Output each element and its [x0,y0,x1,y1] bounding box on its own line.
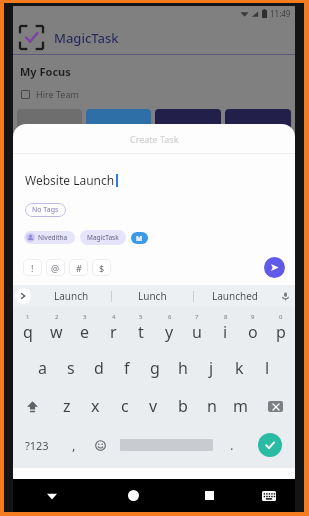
button[interactable]: k [225,349,253,387]
button[interactable]: m [226,387,255,425]
staticText: My Focus [20,64,71,79]
staticText: a [38,357,47,379]
button[interactable]: b [168,387,197,425]
staticText: Launch [54,289,89,303]
button[interactable]: No Tags [25,203,66,217]
staticText: e [80,321,90,343]
button[interactable]: Voice input [275,285,295,307]
button[interactable]: z [52,387,81,425]
staticText: s [67,357,75,379]
button[interactable]: 8 [211,307,239,349]
button[interactable]: MagicTask [80,230,126,245]
staticText: Hire Team [36,88,79,100]
button[interactable]: 9 [239,307,267,349]
button[interactable]: Space [113,425,219,465]
staticText: MagicTask [87,233,119,242]
button[interactable]: Send [264,257,285,278]
staticText: 0 [279,313,283,321]
button[interactable]: f [113,349,141,387]
button[interactable]: Launch [31,285,111,307]
button[interactable]: g [141,349,169,387]
button[interactable]: Recents [175,479,243,512]
staticText: Launched [212,289,258,303]
staticText: h [178,357,188,379]
button[interactable]: Switch keyboard [243,479,295,512]
button[interactable]: s [57,349,85,387]
button[interactable]: 0 [267,307,295,349]
button[interactable]: 6 [155,307,183,349]
button[interactable]: 4 [99,307,127,349]
staticText: c [121,395,129,417]
button[interactable]: v [139,387,168,425]
button[interactable]: n [197,387,226,425]
button[interactable]: c [110,387,139,425]
staticText: 9 [251,313,255,321]
staticText: 2 [55,313,59,321]
staticText: o [248,321,258,343]
button[interactable]: M [131,232,148,244]
staticText: Niveditha [38,233,68,242]
button[interactable]: Shift [13,387,52,425]
staticText: @ [51,262,60,274]
staticText: $ [99,262,105,274]
staticText: v [149,395,158,417]
button[interactable]: a [28,349,57,387]
button[interactable]: # [69,259,88,276]
staticText: p [276,321,286,343]
button[interactable]: Done [245,425,295,465]
staticText: Lunch [138,289,167,303]
staticText: b [178,395,188,417]
button[interactable]: Launched [194,285,275,307]
staticText: 8 [224,313,228,321]
staticText: k [235,357,244,379]
staticText: 11:49 [270,8,291,19]
staticText: 5 [139,313,143,321]
staticText: . [230,436,234,454]
staticText: Website Launch [25,172,115,188]
button[interactable]: x [81,387,110,425]
staticText: Create Task [130,133,179,145]
staticText: g [150,357,160,379]
staticText: No Tags [32,205,59,215]
button[interactable]: 7 [183,307,211,349]
button[interactable]: ?123 [13,425,61,465]
staticText: d [94,357,104,379]
button[interactable]: Home [91,479,175,512]
button[interactable]: More suggestions [15,288,31,304]
staticText: t [138,321,144,343]
button[interactable]: Lunch [112,285,193,307]
staticText: ?123 [25,438,49,453]
staticText: 4 [112,313,116,321]
staticText: m [233,395,248,417]
button[interactable]: d [85,349,113,387]
staticText: l [265,357,270,379]
button[interactable]: Emoji [87,425,113,465]
staticText: ! [31,262,34,274]
staticText: y [165,321,174,343]
button[interactable]: Backspace [255,387,295,425]
button[interactable]: l [253,349,281,387]
staticText: MagicTask [54,29,119,47]
button[interactable]: 2 [42,307,71,349]
button[interactable]: Back [13,479,91,512]
staticText: x [91,395,100,417]
button[interactable]: Niveditha [24,231,75,244]
staticText: q [23,321,33,343]
button[interactable]: j [197,349,225,387]
staticText: 3 [83,313,87,321]
button[interactable]: 5 [127,307,155,349]
staticText: , [72,436,76,454]
staticText: j [209,357,214,379]
button[interactable]: h [169,349,197,387]
button[interactable]: 1 [13,307,42,349]
staticText: 7 [195,313,199,321]
button[interactable]: , [61,425,87,465]
button[interactable]: $ [92,259,111,276]
staticText: 6 [168,313,172,321]
button[interactable]: ! [23,259,42,276]
staticText: u [192,321,202,343]
staticText: w [50,321,63,343]
button[interactable]: . [219,425,245,465]
button[interactable]: 3 [71,307,99,349]
button[interactable]: @ [46,259,65,276]
